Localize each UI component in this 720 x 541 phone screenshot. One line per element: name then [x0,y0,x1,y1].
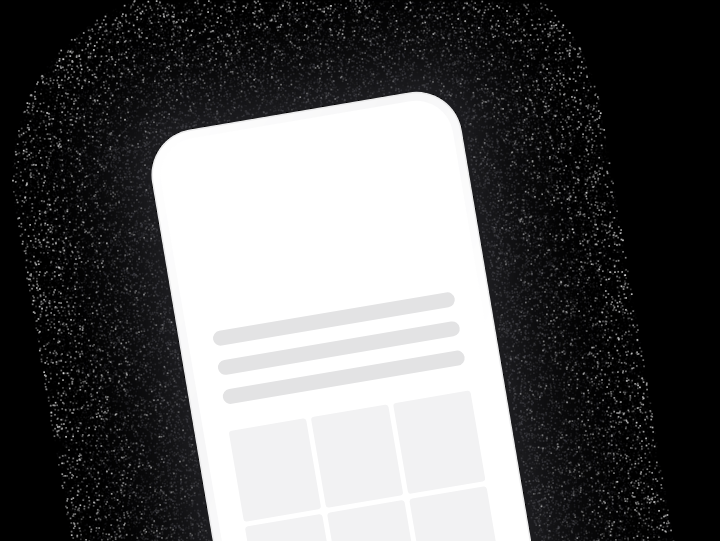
button[interactable]: Phone mockup preview [0,0,720,541]
